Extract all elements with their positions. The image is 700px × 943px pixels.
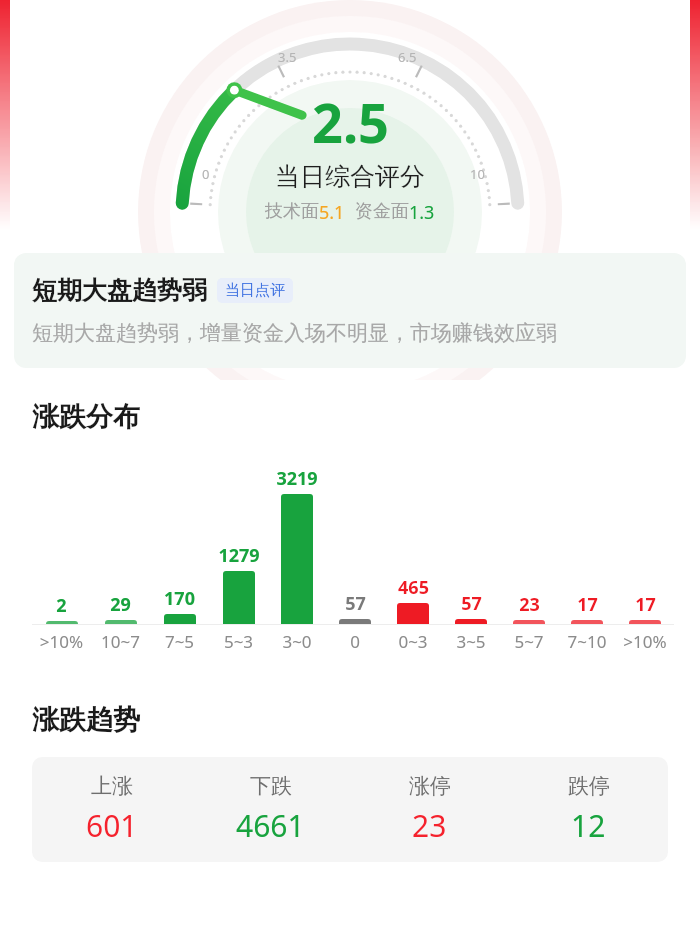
staticText: 17 xyxy=(577,592,598,617)
button[interactable]: 涨跌分布 xyxy=(14,380,686,669)
staticText: 10 xyxy=(470,165,485,183)
staticText: 当日综合评分 xyxy=(275,161,425,192)
staticText: 3~0 xyxy=(268,630,326,653)
staticText: 23 xyxy=(412,805,447,846)
staticText: 当日点评 xyxy=(225,281,285,300)
button[interactable]: 涨跌趋势 xyxy=(14,681,686,880)
staticText: >10% xyxy=(616,630,674,653)
staticText: 跌停 xyxy=(568,773,610,799)
staticText: 23 xyxy=(519,592,540,617)
staticText: 短期大盘趋势弱 xyxy=(32,275,207,306)
staticText: 0~3 xyxy=(384,630,442,653)
staticText: 2 xyxy=(56,593,67,618)
staticText: 技术面 xyxy=(265,200,319,223)
staticText: 涨跌分布 xyxy=(32,400,140,434)
staticText: 3~5 xyxy=(442,630,500,653)
staticText: 2.5 xyxy=(312,85,389,159)
staticText: 5~7 xyxy=(500,630,558,653)
staticText: 601 xyxy=(86,805,138,846)
staticText: 29 xyxy=(110,592,131,617)
staticText: 170 xyxy=(164,586,195,611)
staticText: 3219 xyxy=(276,466,318,491)
staticText: 涨跌趋势 xyxy=(32,703,140,737)
staticText: 1.3 xyxy=(409,200,435,225)
staticText: 0 xyxy=(202,165,210,183)
staticText: 6.5 xyxy=(398,48,417,66)
staticText: 下跌 xyxy=(250,773,292,799)
staticText: 上涨 xyxy=(91,773,133,799)
staticText: 465 xyxy=(398,575,429,600)
staticText: 57 xyxy=(461,591,482,616)
staticText: 12 xyxy=(571,805,606,846)
staticText: 57 xyxy=(345,591,366,616)
staticText: 5.1 xyxy=(319,200,345,225)
staticText: 资金面 xyxy=(355,200,409,223)
staticText: 3.5 xyxy=(278,48,297,66)
staticText: 5~3 xyxy=(209,630,268,653)
staticText: 短期大盘趋势弱，增量资金入场不明显，市场赚钱效应弱 xyxy=(32,320,557,346)
staticText: 10~7 xyxy=(91,630,150,653)
staticText: 7~10 xyxy=(558,630,616,653)
staticText: 7~5 xyxy=(150,630,209,653)
staticText: 1279 xyxy=(218,543,260,568)
staticText: 0 xyxy=(326,630,384,653)
staticText: 17 xyxy=(635,592,656,617)
staticText: 涨停 xyxy=(409,773,451,799)
staticText: 4661 xyxy=(236,805,305,846)
staticText: >10% xyxy=(32,630,91,653)
button[interactable]: 短期大盘趋势弱 xyxy=(14,253,686,368)
